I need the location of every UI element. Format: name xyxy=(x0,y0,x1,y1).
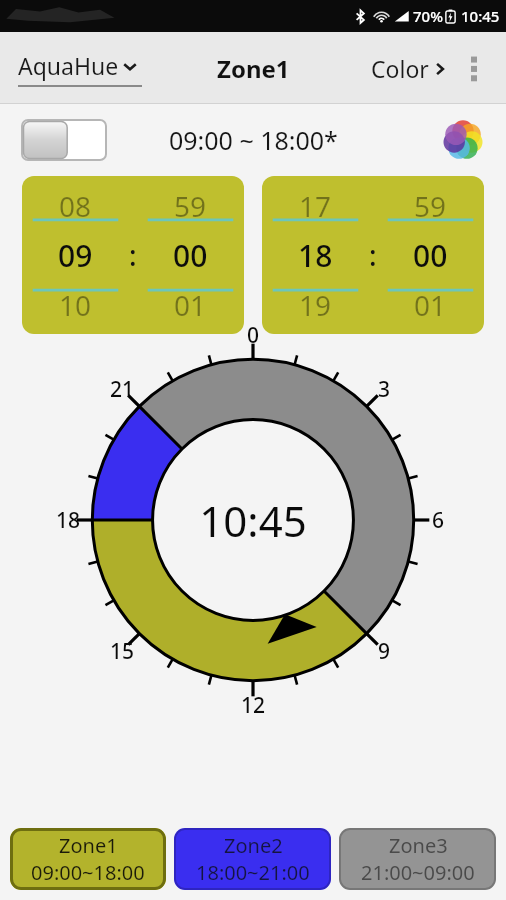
staticText: : xyxy=(369,236,377,274)
button[interactable]: Zone2 xyxy=(174,828,331,890)
staticText: 3 xyxy=(378,375,391,404)
staticText: : xyxy=(129,236,137,274)
button[interactable]: AquaHue xyxy=(18,50,142,87)
button[interactable]: 24 hour zone dial xyxy=(67,334,439,706)
button[interactable]: 08 xyxy=(22,176,244,334)
staticText: 9 xyxy=(378,637,391,666)
staticText: 10 xyxy=(59,286,92,324)
staticText: Zone2 xyxy=(224,832,283,859)
staticText: 09:00~18:00 xyxy=(31,859,145,886)
button[interactable]: Zone1 xyxy=(217,52,290,85)
staticText: 10:45 xyxy=(199,492,307,549)
staticText: 17 xyxy=(299,187,332,225)
button[interactable]: Color picker xyxy=(440,117,486,163)
staticText: 70% xyxy=(413,6,443,26)
staticText: 21:00~09:00 xyxy=(361,859,475,886)
staticText: 0 xyxy=(247,321,260,350)
staticText: 6 xyxy=(432,506,445,535)
button[interactable]: Zone1 xyxy=(10,828,166,890)
staticText: Zone1 xyxy=(217,52,290,85)
button[interactable]: Color xyxy=(371,53,448,84)
staticText: 19 xyxy=(299,286,332,324)
staticText: 18 xyxy=(56,506,81,535)
staticText: 15 xyxy=(110,637,135,666)
staticText: 21 xyxy=(110,375,135,404)
staticText: 09:00 ~ 18:00* xyxy=(169,123,338,157)
staticText: 18:00~21:00 xyxy=(196,859,310,886)
staticText: AquaHue xyxy=(18,50,119,81)
staticText: Zone3 xyxy=(389,832,448,859)
staticText: Zone1 xyxy=(59,832,118,859)
staticText: 08 xyxy=(59,187,92,225)
staticText: 09 xyxy=(58,235,93,276)
staticText: 12 xyxy=(241,691,266,720)
button[interactable]: Zone3 xyxy=(339,828,496,890)
staticText: 10:45 xyxy=(461,6,500,26)
staticText: 01 xyxy=(414,286,447,324)
staticText: Color xyxy=(371,53,429,84)
button[interactable]: More options xyxy=(456,50,492,86)
staticText: 18 xyxy=(298,235,333,276)
staticText: 00 xyxy=(413,235,448,276)
button[interactable]: Enable schedule xyxy=(22,120,106,160)
staticText: 59 xyxy=(414,187,447,225)
staticText: 01 xyxy=(174,286,207,324)
button[interactable]: 17 xyxy=(262,176,484,334)
staticText: 59 xyxy=(174,187,207,225)
staticText: 00 xyxy=(173,235,208,276)
